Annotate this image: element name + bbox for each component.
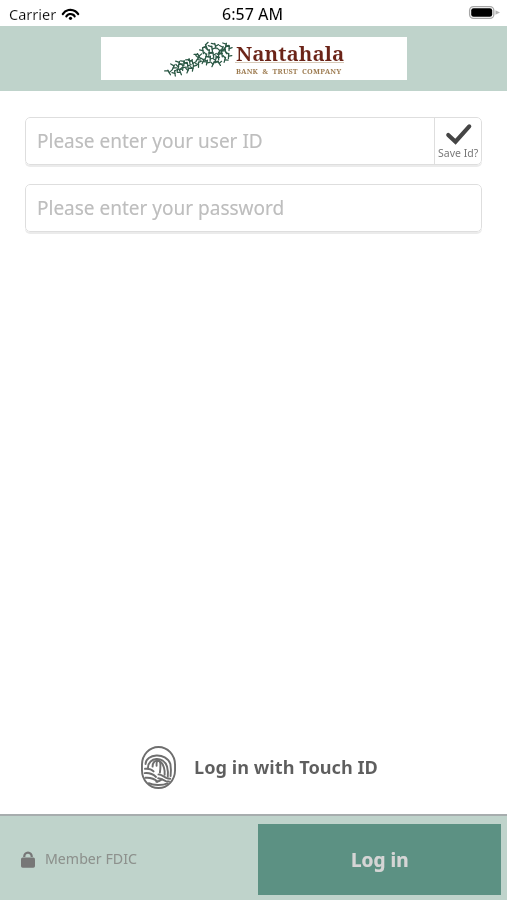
button[interactable]: Log in: [258, 824, 501, 895]
button[interactable]: Secure: [21, 816, 258, 900]
staticText: BANK & TRUST COMPANY: [236, 66, 342, 76]
button[interactable]: Log in with Touch ID: [141, 745, 378, 789]
staticText: Nantahala: [236, 39, 345, 67]
staticText: 6:57 AM: [222, 3, 284, 25]
button[interactable]: Please enter your password: [25, 184, 482, 232]
button[interactable]: Save Id: [435, 117, 482, 165]
staticText: Member FDIC: [45, 849, 137, 868]
staticText: Carrier: [9, 4, 57, 24]
staticText: Log in: [351, 847, 409, 873]
staticText: Log in with Touch ID: [194, 755, 378, 780]
button[interactable]: Please enter your user ID: [25, 117, 434, 165]
staticText: Please enter your user ID: [37, 128, 263, 154]
staticText: Save Id?: [438, 146, 479, 160]
staticText: Please enter your password: [37, 195, 285, 221]
other: Secure: [21, 850, 35, 868]
